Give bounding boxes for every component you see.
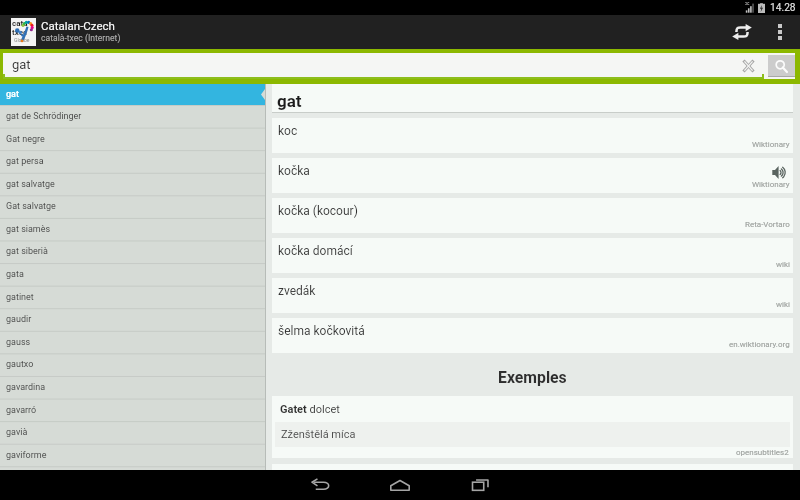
button[interactable]: Gat salvatge xyxy=(0,195,265,218)
staticText: gatinet xyxy=(6,292,34,303)
staticText: gauss xyxy=(6,337,31,348)
staticText: Wiktionary xyxy=(752,180,790,189)
staticText: gautxo xyxy=(6,359,34,370)
button[interactable]: gauss xyxy=(0,331,265,354)
staticText: koc xyxy=(278,124,298,138)
staticText: gata xyxy=(6,269,24,280)
staticText: šelma kočkovitá xyxy=(278,324,365,338)
staticText: opensubtitles2 xyxy=(736,448,789,457)
staticText: gat xyxy=(12,57,31,72)
staticText: kočka domácí xyxy=(278,244,353,258)
button[interactable]: gat siberià xyxy=(0,240,265,263)
button[interactable]: kočka domácí xyxy=(272,238,793,273)
button[interactable]: Recent apps xyxy=(440,470,520,500)
staticText: 14.28 xyxy=(770,2,796,14)
button[interactable]: kočka xyxy=(272,158,793,193)
button[interactable]: Gat negre xyxy=(0,128,265,151)
staticText: txec xyxy=(12,28,28,37)
staticText: gavarró xyxy=(6,405,37,416)
button[interactable]: Home xyxy=(360,470,440,500)
staticText: gat de Schrödinger xyxy=(6,111,82,122)
staticText: gat xyxy=(277,91,302,111)
staticText: Gat salvatge xyxy=(6,201,56,212)
staticText: wiki xyxy=(776,300,790,309)
staticText: Wiktionary xyxy=(752,140,790,149)
button[interactable]: gavarró xyxy=(0,399,265,422)
button[interactable]: gat xyxy=(3,53,764,79)
button[interactable]: Back xyxy=(280,470,360,500)
staticText: gat persa xyxy=(6,156,44,167)
staticText: Reta-Vortaro xyxy=(745,220,790,229)
button[interactable]: gaudir xyxy=(0,308,265,331)
staticText: gavià xyxy=(6,427,28,438)
button[interactable]: gat salvatge xyxy=(0,173,265,196)
staticText: gaudir xyxy=(6,314,32,325)
button[interactable]: gavià xyxy=(0,421,265,444)
button[interactable]: gat de Schrödinger xyxy=(0,105,265,128)
staticText: kočka xyxy=(278,164,310,178)
button[interactable]: More options xyxy=(765,15,795,49)
staticText: Glosbe xyxy=(14,37,30,43)
button[interactable]: gatinet xyxy=(0,286,265,309)
staticText: gat siamès xyxy=(6,224,51,235)
button[interactable]: Search xyxy=(768,55,795,77)
staticText: cata xyxy=(12,19,28,28)
staticText: Exemples xyxy=(498,368,567,387)
button[interactable]: kočka (kocour) xyxy=(272,198,793,233)
staticText: Gatet dolcet xyxy=(280,403,340,416)
button[interactable]: šelma kočkovitá xyxy=(272,318,793,353)
staticText: gat siberià xyxy=(6,246,48,257)
button[interactable]: gat siamès xyxy=(0,218,265,241)
staticText: wiki xyxy=(776,260,790,269)
staticText: gaviforme xyxy=(6,450,47,461)
button[interactable]: zvedák xyxy=(272,278,793,313)
button[interactable]: gat persa xyxy=(0,150,265,173)
staticText: gat xyxy=(6,89,19,100)
button[interactable]: gat xyxy=(0,84,265,105)
staticText: Catalan-Czech xyxy=(41,19,115,32)
staticText: Zženštělá míca xyxy=(281,428,356,441)
button[interactable]: Swap languages xyxy=(719,15,765,49)
staticText: zvedák xyxy=(278,284,316,298)
button[interactable]: Play pronunciation xyxy=(770,163,788,181)
staticText: gat salvatge xyxy=(6,179,55,190)
button[interactable]: Gatet dolcet xyxy=(272,396,793,458)
button[interactable]: Clear query xyxy=(736,53,760,79)
button[interactable]: koc xyxy=(272,118,793,153)
button[interactable]: gata xyxy=(0,263,265,286)
staticText: català-txec (Internet) xyxy=(41,33,121,43)
button[interactable]: gavardina xyxy=(0,376,265,399)
staticText: Gat negre xyxy=(6,134,45,145)
staticText: gavardina xyxy=(6,382,46,393)
staticText: en.wiktionary.org xyxy=(729,340,790,349)
staticText: kočka (kocour) xyxy=(278,204,358,218)
button[interactable]: gautxo xyxy=(0,353,265,376)
button[interactable]: gaviforme xyxy=(0,444,265,467)
